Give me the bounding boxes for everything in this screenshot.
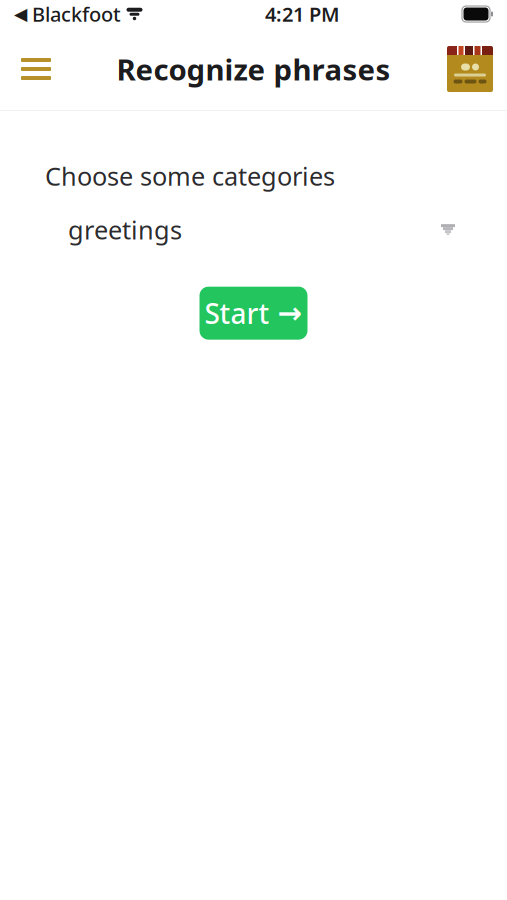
button[interactable]: greetings xyxy=(0,210,507,250)
staticText: ◀ xyxy=(14,4,27,24)
staticText: Blackfoot xyxy=(32,1,121,27)
button[interactable]: Start xyxy=(199,287,307,340)
staticText: Start xyxy=(204,295,269,332)
staticText: greetings xyxy=(68,213,182,246)
button[interactable]: Conversation app logo xyxy=(447,46,493,92)
staticText: Recognize phrases xyxy=(116,49,390,88)
staticText: → xyxy=(277,296,302,330)
staticText: 4:21 PM xyxy=(265,1,340,27)
staticText: Choose some categories xyxy=(45,159,335,193)
button[interactable]: Menu xyxy=(14,47,58,91)
